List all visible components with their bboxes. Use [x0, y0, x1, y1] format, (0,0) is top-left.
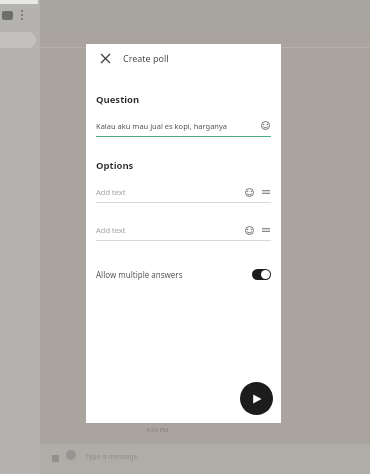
button[interactable]: Reorder option	[261, 225, 271, 235]
button[interactable]: Send poll	[240, 382, 273, 415]
staticText: Create poll	[123, 52, 169, 64]
staticText: Type a message	[85, 452, 138, 462]
button[interactable]: Insert emoji	[244, 225, 255, 236]
button[interactable]: Kalau aku mau jual es kopi, harganya ber…	[96, 118, 271, 137]
staticText: Options	[96, 159, 134, 172]
staticText: Kalau aku mau jual es kopi, harganya ber…	[96, 121, 256, 131]
button[interactable]: Close	[95, 48, 115, 68]
button[interactable]: Add text	[96, 223, 271, 241]
button[interactable]: Add text	[96, 185, 271, 203]
staticText: Add text	[96, 187, 244, 197]
staticText: Allow multiple answers	[96, 269, 252, 280]
staticText: Add text	[96, 225, 244, 235]
button[interactable]: Insert emoji	[260, 120, 271, 131]
staticText: 4:26 PM	[146, 426, 169, 434]
button[interactable]: Allow multiple answers	[86, 263, 281, 285]
staticText: Question	[96, 93, 140, 106]
button[interactable]: Insert emoji	[244, 187, 255, 198]
button[interactable]: Reorder option	[261, 187, 271, 197]
